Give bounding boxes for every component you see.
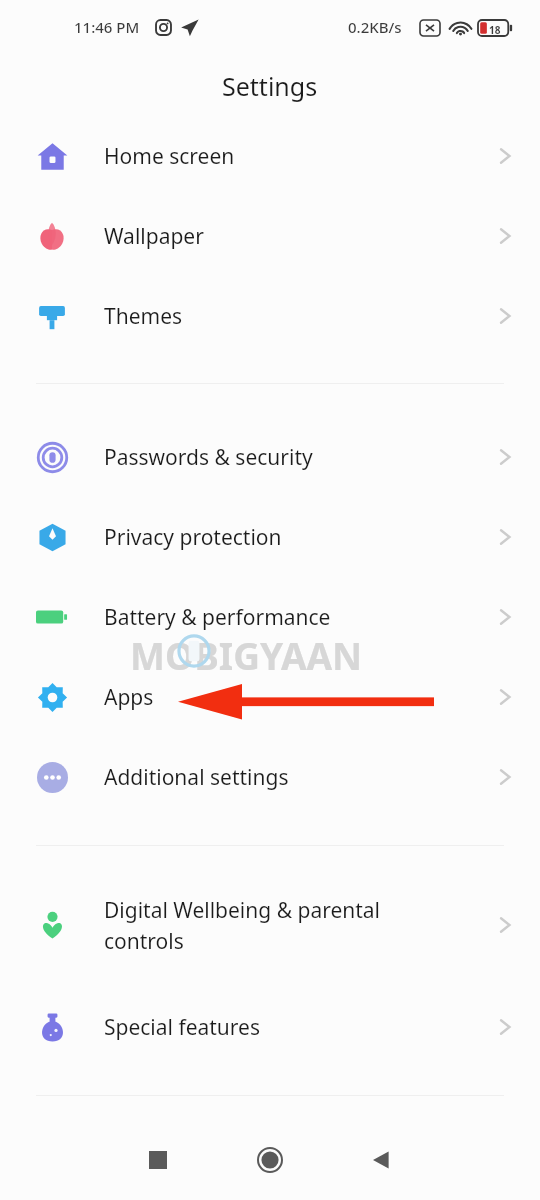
button[interactable]: Home: [237, 1142, 303, 1178]
staticText: Additional settings: [104, 763, 470, 792]
staticText: Wallpaper: [104, 222, 470, 251]
staticText: Battery & performance: [104, 603, 470, 632]
button[interactable]: Additional settings: [0, 752, 540, 802]
button[interactable]: Wallpaper: [0, 211, 540, 261]
staticText: 18: [489, 23, 501, 37]
button[interactable]: Apps: [0, 672, 540, 722]
button[interactable]: Home screen: [0, 131, 540, 181]
staticText: Passwords & security: [104, 443, 470, 472]
staticText: 0.2KB/s: [348, 17, 402, 37]
staticText: Home screen: [104, 142, 470, 171]
button[interactable]: Special features: [0, 1002, 540, 1052]
staticText: Digital Wellbeing & parental controls: [104, 896, 470, 955]
button[interactable]: Back: [348, 1142, 414, 1178]
button[interactable]: Digital Wellbeing & parental controls: [0, 885, 540, 965]
staticText: MOBIGYAAN: [130, 630, 363, 680]
staticText: 11:46 PM: [74, 17, 140, 37]
staticText: Settings: [222, 69, 318, 103]
staticText: Special features: [104, 1013, 470, 1042]
staticText: Apps: [104, 683, 470, 712]
button[interactable]: Battery & performance: [0, 592, 540, 642]
staticText: Privacy protection: [104, 523, 470, 552]
button[interactable]: Privacy protection: [0, 512, 540, 562]
button[interactable]: Recent apps: [125, 1142, 191, 1178]
button[interactable]: Themes: [0, 291, 540, 341]
staticText: Themes: [104, 302, 470, 331]
button[interactable]: Passwords & security: [0, 432, 540, 482]
